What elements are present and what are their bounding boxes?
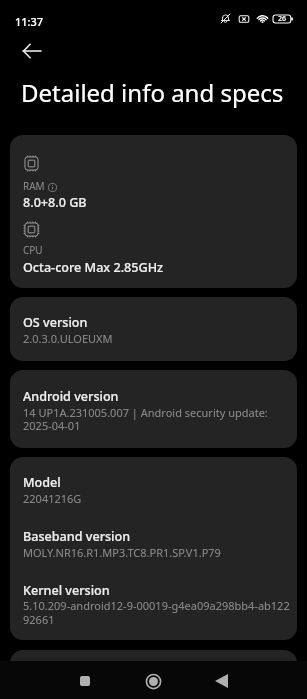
staticText: Android version [23,388,119,405]
staticText: Octa-core Max 2.85GHz [23,259,164,276]
staticText: 2025-04-01 [23,418,297,433]
button[interactable]: Home [130,662,176,699]
staticText: 2.0.3.0.ULOEUXM [23,331,284,346]
button[interactable]: OS version [10,297,297,361]
staticText: OS version [23,314,88,331]
staticText: MOLY.NR16.R1.MP3.TC8.PR1.SP.V1.P79 [23,545,284,560]
staticText: Baseband version [23,528,131,545]
button[interactable]: Back [198,662,244,699]
staticText: 14 UP1A.231005.007 | Android security up… [23,405,297,420]
staticText: CPU [23,243,43,257]
button[interactable]: Back [12,31,51,70]
button[interactable]: Model, baseband and kernel version [10,457,297,640]
button[interactable]: More info [10,650,297,690]
staticText: Model [23,474,61,491]
button[interactable]: Recent apps [62,662,108,699]
staticText: 5.10.209-android12-9-00019-g4ea09a298bb4… [23,598,297,613]
button[interactable]: RAM and CPU [10,135,297,288]
staticText: Kernel version [23,582,110,599]
staticText: RAM [23,179,45,193]
staticText: 26 [278,14,287,24]
staticText: Detailed info and specs [21,76,284,109]
staticText: 8.0+8.0 GB [23,194,87,211]
staticText: 92661 [23,612,297,627]
button[interactable]: Android version [10,370,297,448]
staticText: 11:37 [15,14,44,29]
staticText: 22041216G [23,491,284,506]
